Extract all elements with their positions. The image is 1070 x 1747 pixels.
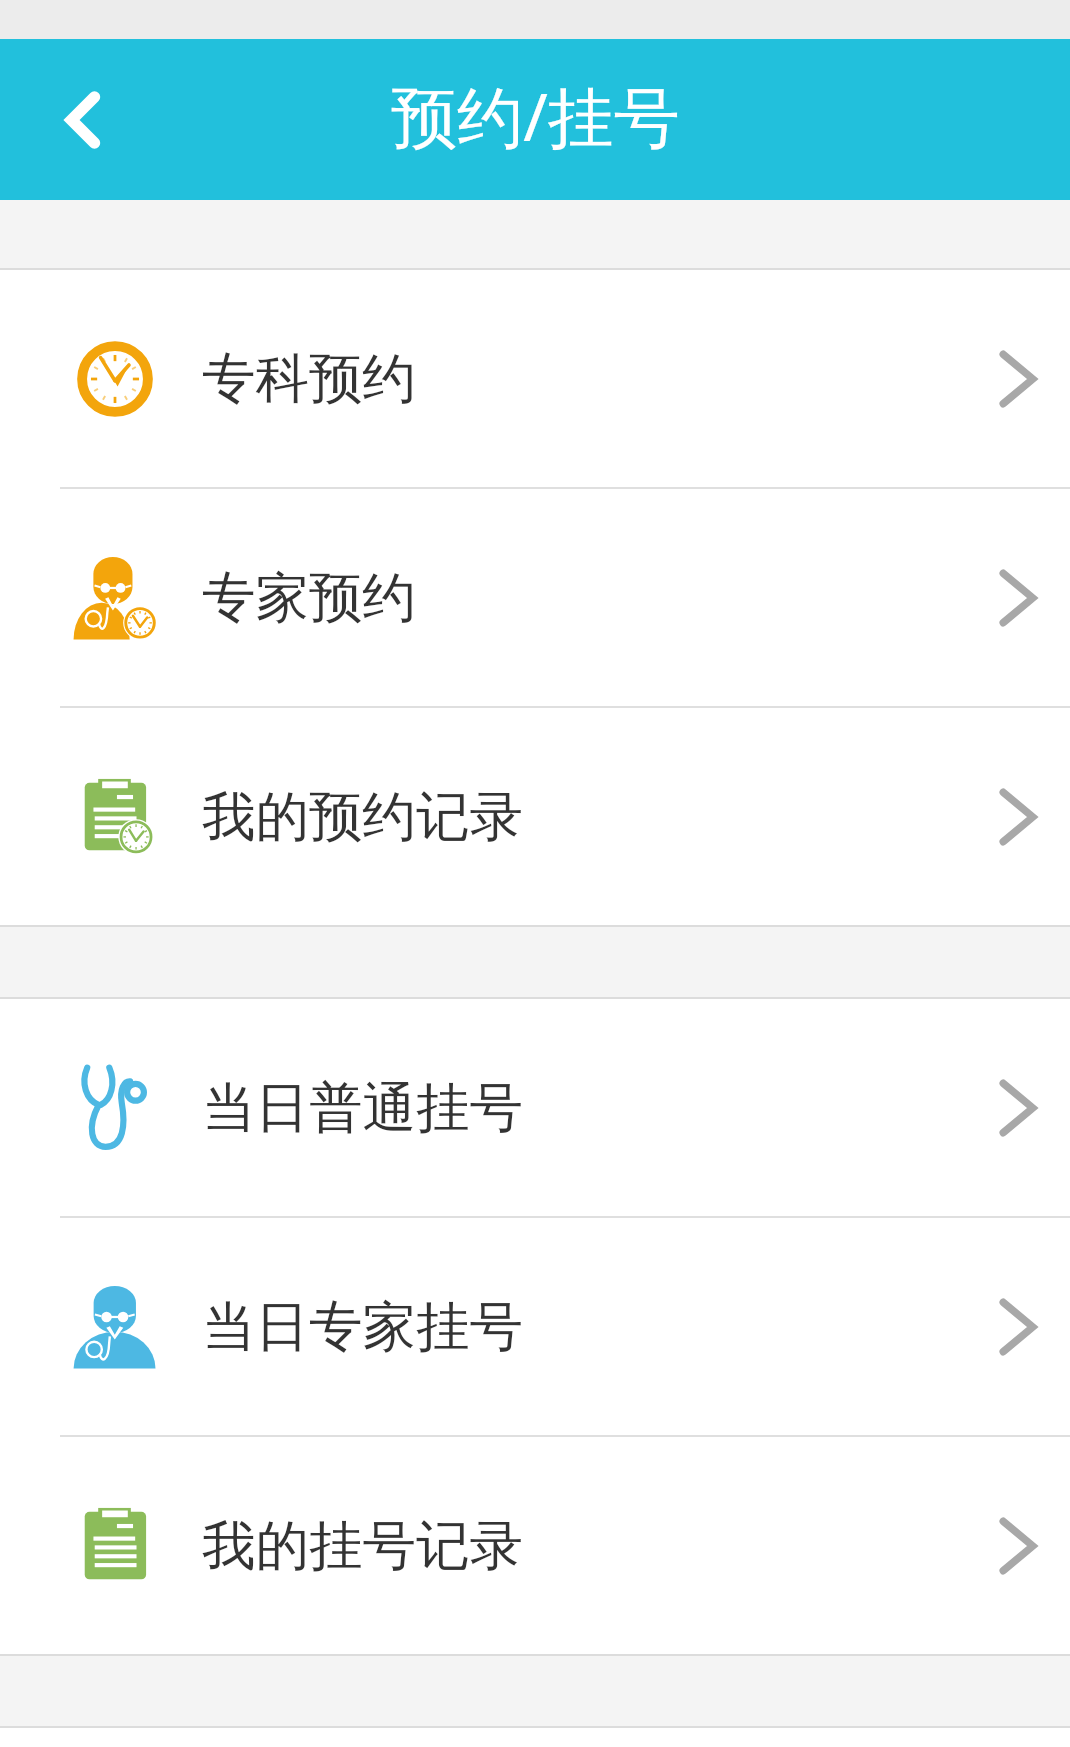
- staticText: 我的预约记录: [202, 783, 523, 850]
- staticText: 专家预约: [202, 564, 416, 631]
- staticText: 当日专家挂号: [202, 1293, 523, 1360]
- staticText: 专科预约: [202, 345, 416, 412]
- button[interactable]: 专科预约: [0, 270, 1070, 487]
- button[interactable]: 当日专家挂号: [0, 1218, 1070, 1435]
- staticText: 当日普通挂号: [202, 1074, 523, 1141]
- button[interactable]: 当日普通挂号: [0, 999, 1070, 1216]
- button[interactable]: 我的挂号记录: [0, 1437, 1070, 1654]
- button[interactable]: 我的预约记录: [0, 708, 1070, 925]
- staticText: 预约/挂号: [391, 70, 680, 160]
- button[interactable]: Back: [35, 72, 131, 168]
- button[interactable]: 专家预约: [0, 489, 1070, 706]
- staticText: 我的挂号记录: [202, 1512, 523, 1579]
